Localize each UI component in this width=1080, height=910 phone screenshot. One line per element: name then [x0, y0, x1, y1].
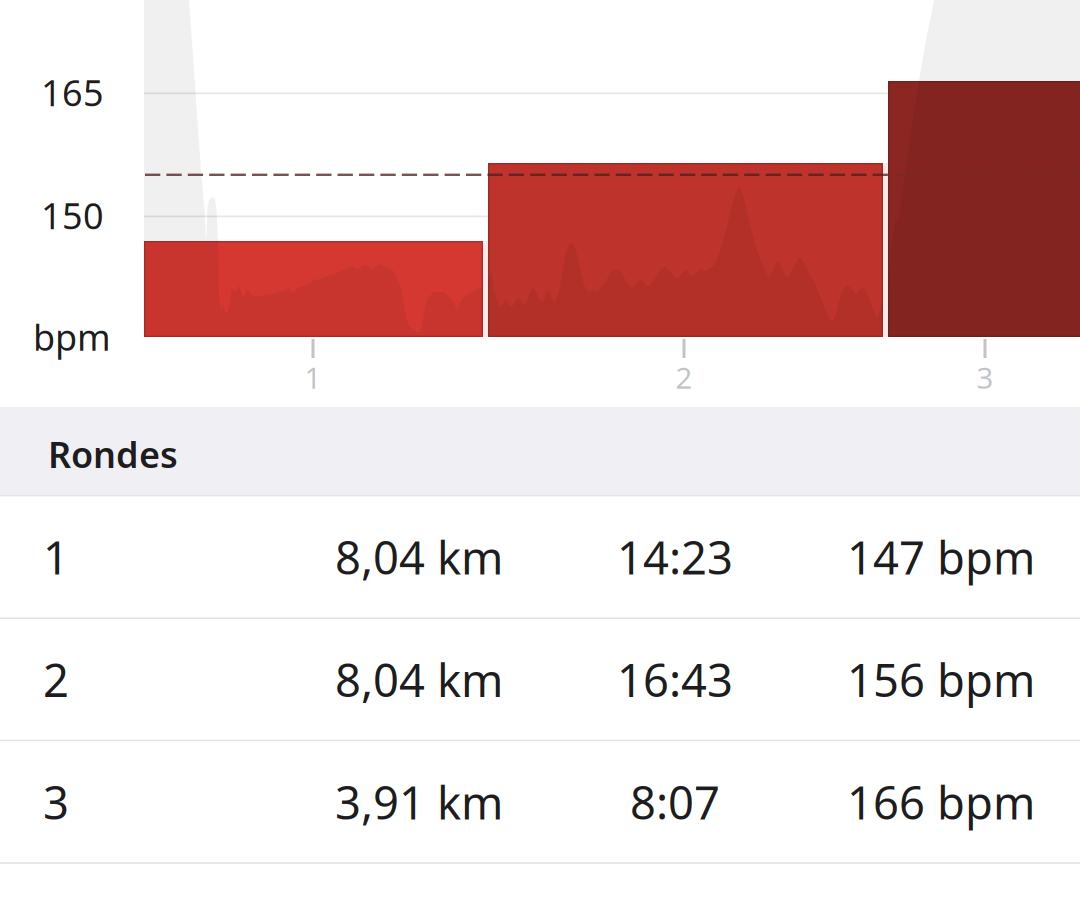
- button[interactable]: 3: [0, 741, 1080, 862]
- staticText: 2: [43, 649, 69, 709]
- staticText: 3,91 km: [335, 772, 503, 832]
- staticText: 8,04 km: [335, 527, 503, 587]
- staticText: 16:43: [617, 649, 733, 709]
- staticText: 156 bpm: [847, 649, 1035, 709]
- staticText: 14:23: [617, 527, 733, 587]
- staticText: 1: [304, 358, 321, 397]
- staticText: 165: [41, 68, 104, 116]
- staticText: 2: [675, 358, 692, 397]
- staticText: 3: [976, 358, 993, 397]
- staticText: 1: [43, 527, 69, 587]
- staticText: 8,04 km: [335, 649, 503, 709]
- staticText: Rondes: [48, 430, 178, 478]
- staticText: 8:07: [630, 772, 720, 832]
- staticText: 3: [43, 772, 69, 832]
- button[interactable]: 1: [0, 497, 1080, 617]
- button[interactable]: 2: [0, 619, 1080, 740]
- staticText: bpm: [33, 313, 111, 361]
- staticText: 150: [41, 191, 104, 239]
- staticText: 147 bpm: [847, 527, 1035, 587]
- staticText: 166 bpm: [847, 772, 1035, 832]
